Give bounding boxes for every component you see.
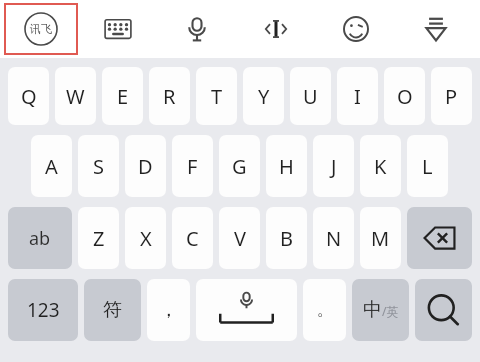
button[interactable]: 符	[84, 279, 141, 341]
button[interactable]: A	[31, 135, 72, 197]
staticText: 讯飞	[30, 22, 52, 36]
button[interactable]: I	[337, 67, 378, 125]
button[interactable]: P	[431, 67, 472, 125]
button[interactable]: F	[172, 135, 213, 197]
button[interactable]: L	[407, 135, 448, 197]
button[interactable]: T	[196, 67, 237, 125]
staticText: ，	[159, 298, 178, 322]
button[interactable]: S	[78, 135, 119, 197]
button[interactable]: C	[172, 207, 213, 269]
staticText: U	[303, 83, 318, 110]
staticText: E	[117, 83, 129, 110]
staticText: I	[354, 83, 361, 110]
button[interactable]: O	[384, 67, 425, 125]
button[interactable]: D	[125, 135, 166, 197]
staticText: N	[326, 225, 342, 252]
staticText: T	[211, 83, 223, 110]
button[interactable]: 123	[8, 279, 78, 341]
staticText: Y	[258, 83, 270, 110]
staticText: H	[279, 153, 294, 180]
button[interactable]: Z	[78, 207, 119, 269]
button[interactable]: Hide keyboard	[396, 3, 476, 55]
staticText: V	[234, 225, 246, 252]
staticText: B	[280, 225, 293, 252]
staticText: C	[186, 225, 199, 252]
button[interactable]: K	[360, 135, 401, 197]
button[interactable]: U	[290, 67, 331, 125]
staticText: ab	[29, 226, 51, 251]
button[interactable]: M	[360, 207, 401, 269]
button[interactable]: 中/英	[352, 279, 409, 341]
staticText: K	[374, 153, 387, 180]
button[interactable]: G	[219, 135, 260, 197]
staticText: L	[422, 153, 433, 180]
staticText: 。	[317, 300, 333, 320]
staticText: 123	[27, 297, 60, 323]
button[interactable]: 。	[303, 279, 346, 341]
button[interactable]: Edit cursor	[236, 3, 316, 55]
button[interactable]: ab	[8, 207, 72, 269]
button[interactable]: Keyboard layout	[78, 3, 157, 55]
staticText: J	[331, 153, 337, 180]
button[interactable]: X	[125, 207, 166, 269]
button[interactable]: E	[102, 67, 143, 125]
button[interactable]: Input method	[4, 3, 78, 55]
staticText: A	[45, 153, 58, 180]
staticText: Q	[21, 83, 37, 110]
button[interactable]: W	[55, 67, 96, 125]
button[interactable]: H	[266, 135, 307, 197]
button[interactable]: ，	[147, 279, 190, 341]
staticText: X	[140, 225, 152, 252]
staticText: R	[163, 83, 176, 110]
button[interactable]: Voice input	[157, 3, 236, 55]
button[interactable]: Search	[415, 279, 472, 341]
button[interactable]: B	[266, 207, 307, 269]
button[interactable]: Y	[243, 67, 284, 125]
button[interactable]: Q	[8, 67, 49, 125]
staticText: 符	[103, 298, 122, 322]
staticText: W	[66, 83, 85, 110]
staticText: F	[187, 153, 198, 180]
staticText: G	[232, 153, 247, 180]
staticText: D	[138, 153, 153, 180]
button[interactable]: V	[219, 207, 260, 269]
staticText: S	[93, 153, 104, 180]
button[interactable]: N	[313, 207, 354, 269]
staticText: O	[397, 83, 413, 110]
staticText: P	[445, 83, 458, 110]
button[interactable]: J	[313, 135, 354, 197]
staticText: M	[371, 225, 390, 252]
button[interactable]: Space	[196, 279, 297, 341]
staticText: 中/英	[363, 298, 399, 322]
button[interactable]: Emoji	[316, 3, 396, 55]
button[interactable]: R	[149, 67, 190, 125]
staticText: Z	[93, 225, 105, 252]
button[interactable]: Backspace	[407, 207, 472, 269]
